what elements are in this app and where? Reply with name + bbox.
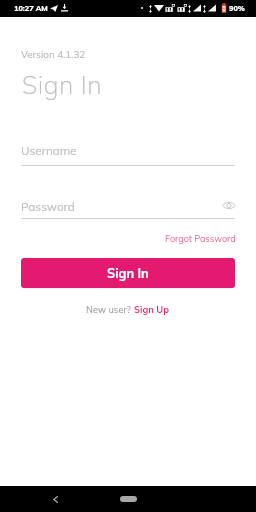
staticText: Username (21, 143, 77, 158)
button[interactable]: Sign Up (134, 304, 170, 316)
button[interactable]: Home (120, 496, 137, 502)
staticText: Sign In (107, 265, 149, 281)
staticText: New user? (86, 304, 134, 316)
button[interactable]: Back (47, 491, 63, 507)
staticText: Password (21, 199, 75, 214)
button[interactable]: Show password (220, 196, 238, 214)
staticText: Version 4.1.32 (21, 48, 86, 60)
button[interactable]: Sign In (21, 258, 235, 288)
staticText: Sign In (22, 69, 103, 100)
staticText: 10:27 AM (14, 4, 48, 13)
staticText: 90% (229, 4, 245, 13)
button[interactable]: Forgot Password (165, 233, 236, 244)
